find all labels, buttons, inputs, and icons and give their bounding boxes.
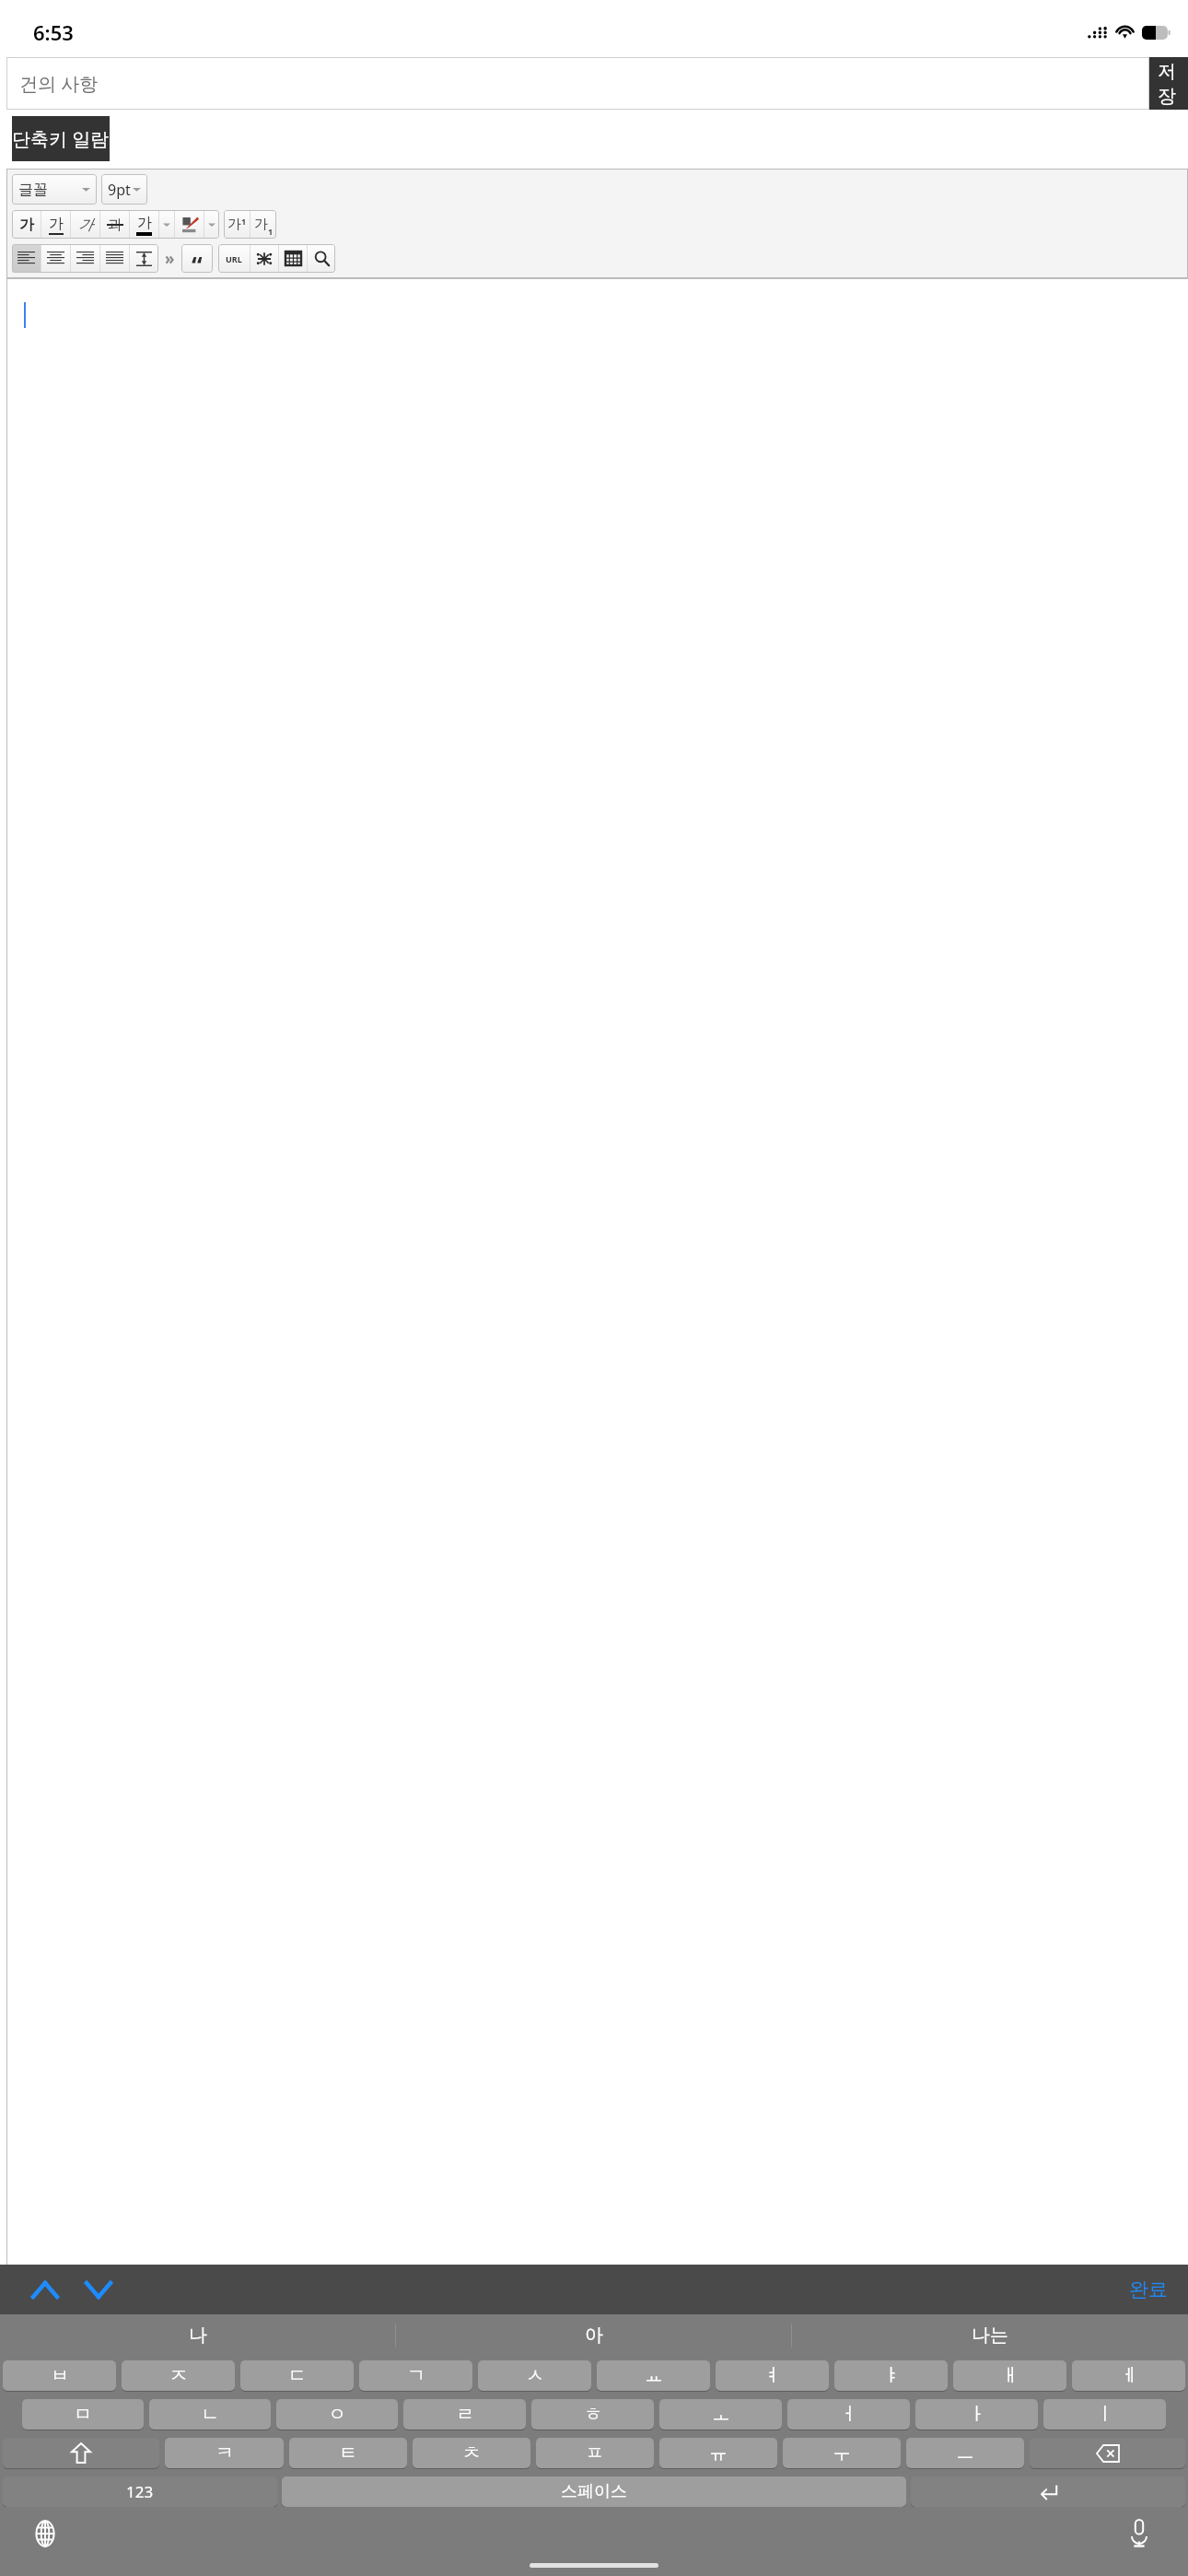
button[interactable]: 9pt (101, 174, 147, 205)
staticText: 완료 (1129, 2277, 1168, 2301)
button[interactable] (1030, 2438, 1185, 2468)
staticText: ㅈ (169, 2364, 188, 2387)
button[interactable]: ㅎ (531, 2399, 654, 2430)
button[interactable]: 저장 (1149, 57, 1188, 110)
staticText: 건의 사항 (19, 71, 99, 96)
button[interactable]: ㅇ (276, 2399, 398, 2430)
button[interactable]: URL (218, 244, 250, 273)
staticText: ㄴ (201, 2403, 219, 2426)
button[interactable]: 123 (3, 2476, 277, 2507)
staticText: ㅠ (709, 2441, 728, 2465)
button[interactable]: 나는 (792, 2314, 1188, 2356)
staticText: ㅍ (586, 2441, 604, 2465)
button[interactable]: ㅔ (1072, 2360, 1185, 2391)
button[interactable]: ㅍ (536, 2438, 654, 2468)
staticText: ㅡ (956, 2441, 974, 2465)
staticText: 123 (126, 2481, 154, 2502)
button[interactable]: ㅐ (953, 2360, 1066, 2391)
staticText: ㅑ (882, 2364, 901, 2387)
staticText: ㅔ (1120, 2364, 1138, 2387)
other: Return (911, 2476, 1185, 2507)
button[interactable]: ㅠ (659, 2438, 777, 2468)
other: Backspace (1030, 2438, 1185, 2468)
staticText: 1 (241, 216, 247, 227)
staticText: 나 (189, 2324, 207, 2347)
button[interactable]: ㅋ (165, 2438, 284, 2468)
button[interactable]: ㅜ (783, 2438, 901, 2468)
button[interactable]: 과 (100, 210, 129, 239)
button[interactable]: ㅡ (906, 2438, 1024, 2468)
staticText: ㅕ (763, 2364, 782, 2387)
button[interactable] (41, 244, 70, 273)
button[interactable]: ㅈ (122, 2360, 235, 2391)
button[interactable] (911, 2476, 1185, 2507)
button[interactable]: 스페이스 (282, 2476, 906, 2507)
button[interactable]: 건의 사항 (6, 57, 1149, 110)
button[interactable]: 글꼴 (12, 174, 97, 205)
button[interactable]: ㅗ (659, 2399, 782, 2430)
button[interactable]: » (165, 248, 175, 269)
button[interactable]: ㅁ (22, 2399, 144, 2430)
staticText: ㅋ (215, 2441, 234, 2465)
button[interactable]: ㅅ (478, 2360, 591, 2391)
button[interactable]: 나 (0, 2314, 396, 2356)
button[interactable] (130, 244, 158, 273)
staticText: ㅐ (1001, 2364, 1019, 2387)
staticText: 가 (78, 216, 93, 234)
staticText: ㅂ (51, 2364, 69, 2387)
button[interactable]: Dictation (1118, 2512, 1160, 2555)
button[interactable]: ㄷ (240, 2360, 354, 2391)
button[interactable] (175, 210, 204, 239)
button[interactable]: 가 (250, 210, 276, 239)
button[interactable] (3, 2438, 159, 2468)
button[interactable]: 가 (12, 210, 41, 239)
staticText: 단축키 일람 (12, 126, 110, 151)
staticText: ㄷ (288, 2364, 307, 2387)
other: Shift (3, 2438, 159, 2468)
button[interactable]: ㅂ (3, 2360, 116, 2391)
staticText: 가 (227, 216, 241, 233)
staticText: URL (226, 253, 242, 264)
staticText: 나는 (972, 2324, 1008, 2347)
staticText: ㅏ (968, 2403, 986, 2426)
button[interactable] (250, 244, 278, 273)
button[interactable]: 가 (41, 210, 70, 239)
button[interactable] (159, 210, 174, 239)
button[interactable]: ㅑ (834, 2360, 948, 2391)
button[interactable]: 단축키 일람 (12, 116, 110, 161)
button[interactable]: ㅕ (716, 2360, 829, 2391)
button[interactable] (279, 244, 307, 273)
staticText: 가 (19, 216, 34, 234)
button[interactable]: ㅓ (787, 2399, 910, 2430)
button: Previous field (0, 2265, 1188, 2314)
button[interactable]: Previous field (24, 2268, 66, 2311)
button[interactable]: 가 (130, 210, 158, 239)
button[interactable]: 가 (224, 210, 250, 239)
button[interactable] (100, 244, 129, 273)
button[interactable] (308, 244, 335, 273)
button[interactable]: 아 (396, 2314, 792, 2356)
staticText: ㄱ (407, 2364, 425, 2387)
button[interactable]: ㅏ (915, 2399, 1038, 2430)
staticText: 6:53 (33, 18, 74, 46)
button[interactable]: Next field (77, 2268, 120, 2311)
staticText: 9pt (108, 180, 131, 200)
button[interactable]: ㅣ (1043, 2399, 1166, 2430)
button[interactable]: ㅊ (413, 2438, 530, 2468)
button[interactable]: 가 (71, 210, 99, 239)
button[interactable]: ㄴ (149, 2399, 271, 2430)
button[interactable]: ㅌ (289, 2438, 407, 2468)
button[interactable] (204, 210, 219, 239)
button[interactable]: Change keyboard language (24, 2512, 66, 2555)
button[interactable]: 완료 (1122, 2272, 1175, 2307)
button[interactable] (71, 244, 99, 273)
button[interactable]: ㅛ (597, 2360, 710, 2391)
button[interactable] (12, 244, 41, 273)
staticText: ㅛ (645, 2364, 663, 2387)
button[interactable]: ㄹ (403, 2399, 526, 2430)
staticText: 가 (49, 215, 64, 233)
button[interactable]: ㄱ (359, 2360, 472, 2391)
staticText: ㅅ (526, 2364, 544, 2387)
button[interactable]: “ (181, 244, 213, 273)
